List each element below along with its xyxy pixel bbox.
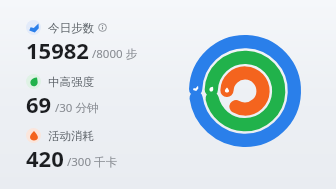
- staticText: /8000 步: [89, 46, 138, 62]
- staticText: /30 分钟: [52, 100, 99, 116]
- staticText: 中高强度: [48, 75, 94, 89]
- staticText: 今日步数: [48, 21, 94, 35]
- button[interactable]: Activity rings: [189, 35, 301, 147]
- staticText: 69: [26, 89, 52, 119]
- button[interactable]: 活动消耗: [26, 128, 117, 173]
- staticText: 活动消耗: [48, 129, 94, 143]
- button[interactable]: 中高强度: [26, 74, 99, 119]
- staticText: /300 千卡: [64, 154, 117, 170]
- staticText: 15982: [26, 35, 89, 65]
- staticText: 420: [26, 143, 64, 173]
- button[interactable]: 今日步数: [26, 20, 138, 65]
